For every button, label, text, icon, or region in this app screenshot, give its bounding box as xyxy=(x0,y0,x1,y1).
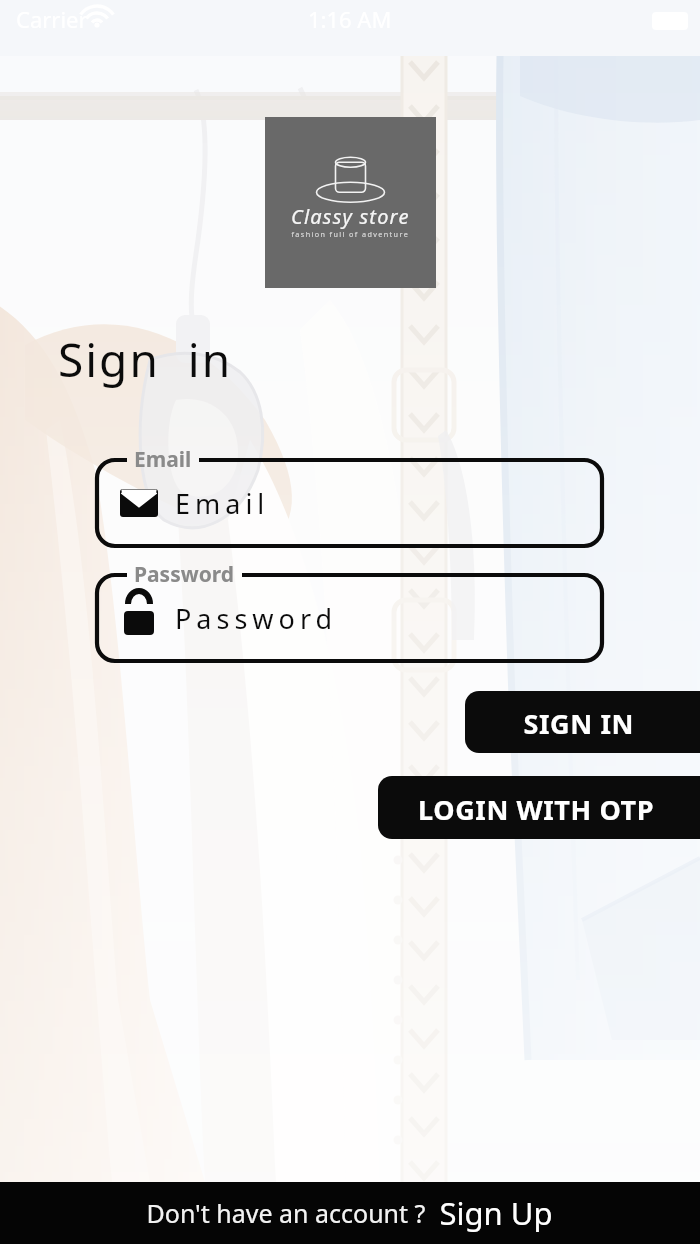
button[interactable] xyxy=(97,460,602,546)
button[interactable] xyxy=(97,575,602,661)
button[interactable] xyxy=(465,691,700,753)
button[interactable] xyxy=(378,776,700,839)
button[interactable] xyxy=(0,1182,700,1244)
